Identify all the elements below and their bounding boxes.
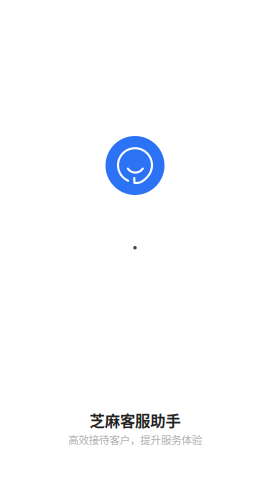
staticText: 高效接待客户，提升服务体验: [68, 432, 202, 447]
staticText: 芝麻客服助手: [89, 409, 180, 431]
